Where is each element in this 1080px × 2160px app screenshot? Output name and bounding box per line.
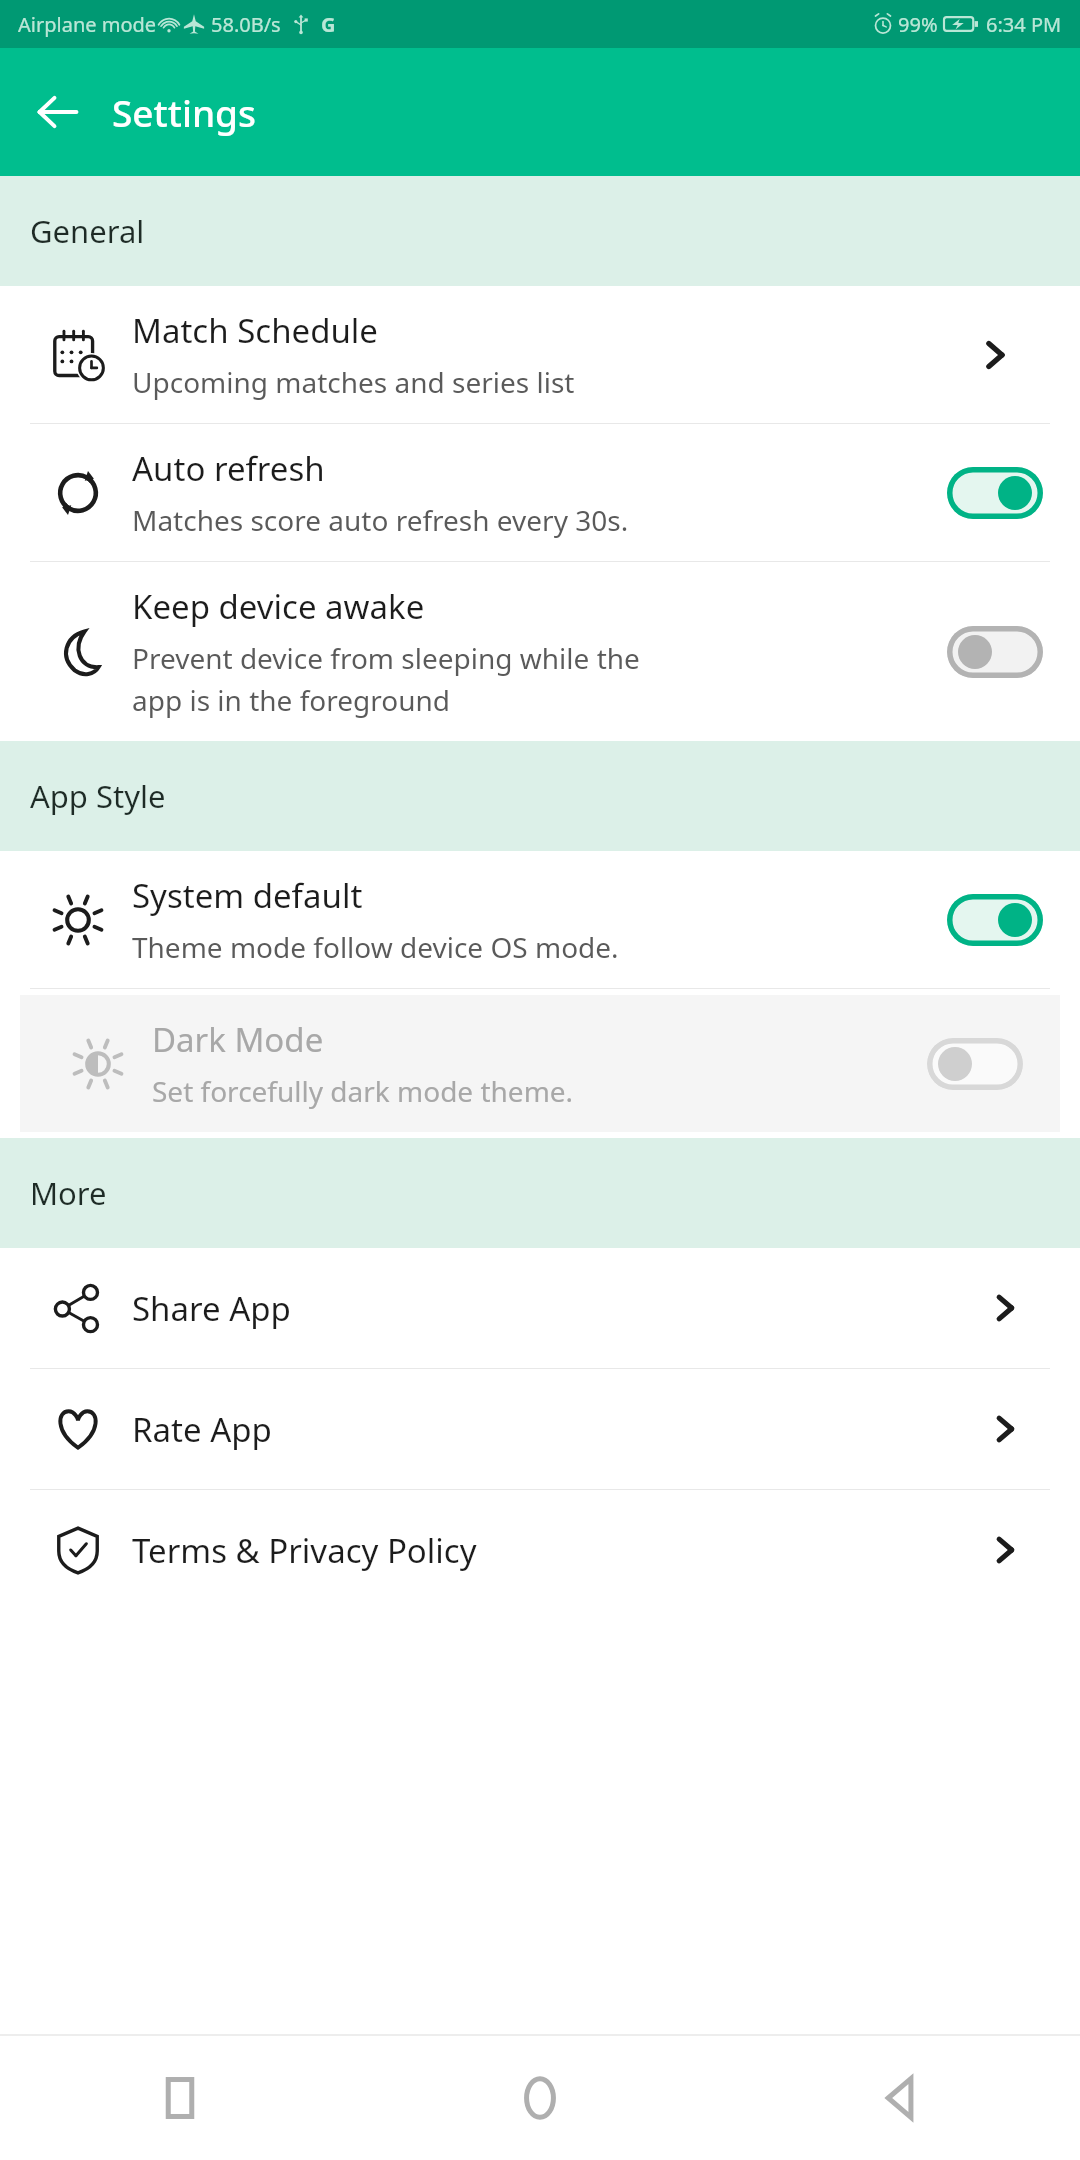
staticText: Matches score auto refresh every 30s.	[132, 501, 629, 539]
button[interactable]: Toggle on	[947, 894, 1043, 946]
button[interactable]: System default	[0, 851, 1080, 988]
button[interactable]: Recents	[0, 2036, 360, 2160]
staticText: G	[321, 11, 336, 38]
button[interactable]: Match Schedule	[0, 286, 1080, 423]
button[interactable]: Back	[26, 80, 90, 144]
staticText: Prevent device from sleeping while the a…	[132, 639, 640, 719]
button[interactable]: Share App	[0, 1248, 1080, 1368]
staticText: Dark Mode	[152, 1017, 324, 1062]
staticText: Share App	[132, 1286, 960, 1331]
button[interactable]: Keep device awake	[0, 562, 1080, 741]
button[interactable]: Back	[720, 2036, 1080, 2160]
staticText: App Style	[30, 775, 166, 817]
button[interactable]: Toggle off	[927, 1038, 1023, 1090]
staticText: General	[30, 210, 145, 252]
staticText: Set forcefully dark mode theme.	[152, 1072, 574, 1110]
button[interactable]: Dark Mode	[20, 995, 1060, 1132]
staticText: 58.0B/s	[211, 11, 281, 38]
staticText: More	[30, 1172, 107, 1214]
button[interactable]: Terms & Privacy Policy	[0, 1490, 1080, 1610]
staticText: Auto refresh	[132, 446, 325, 491]
staticText: Settings	[112, 87, 257, 137]
staticText: Theme mode follow device OS mode.	[132, 928, 619, 966]
button[interactable]: Auto refresh	[0, 424, 1080, 561]
staticText: Upcoming matches and series list	[132, 363, 575, 401]
button[interactable]: Rate App	[0, 1369, 1080, 1489]
staticText: Rate App	[132, 1407, 960, 1452]
button[interactable]: Toggle off	[947, 626, 1043, 678]
staticText: Keep device awake	[132, 584, 425, 629]
button[interactable]: Toggle on	[947, 467, 1043, 519]
staticText: 99%	[898, 11, 938, 38]
staticText: System default	[132, 873, 363, 918]
staticText: Match Schedule	[132, 308, 378, 353]
staticText: 6:34 PM	[986, 11, 1062, 38]
staticText: Terms & Privacy Policy	[132, 1528, 960, 1573]
staticText: Airplane mode	[18, 11, 157, 38]
button[interactable]: Home	[360, 2036, 720, 2160]
